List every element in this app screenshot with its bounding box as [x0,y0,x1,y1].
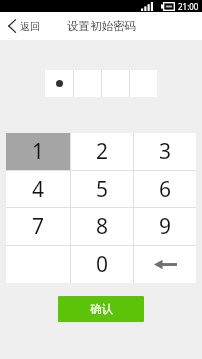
staticText: 4 [32,175,45,204]
button[interactable]: 9 [134,208,196,245]
staticText: 0 [96,250,109,279]
staticText: 确认 [90,302,113,316]
staticText: 返回 [20,20,40,33]
other: Back [8,19,16,33]
button[interactable]: 8 [71,208,133,245]
staticText: 2 [96,137,109,166]
button[interactable]: 0 [71,246,133,283]
staticText: 6 [159,175,172,204]
button[interactable] [45,70,157,97]
staticText: 1 [32,137,45,166]
button[interactable]: 确认 [58,296,144,322]
button[interactable]: Back [0,19,48,33]
button[interactable]: 2 [71,133,133,170]
staticText: 5 [96,175,109,204]
button[interactable]: 3 [134,133,196,170]
button[interactable]: 6 [134,171,196,207]
staticText: 9 [159,212,172,241]
staticText: 7 [32,212,45,241]
staticText: 设置初始密码 [67,19,136,33]
staticText: 21:00 [178,1,199,12]
staticText: 3 [159,137,172,166]
button[interactable]: 7 [6,208,70,245]
button[interactable]: 1 [6,133,70,170]
button[interactable]: 4 [6,171,70,207]
staticText: 8 [96,212,109,241]
button[interactable]: 5 [71,171,133,207]
button[interactable]: Backspace [134,246,196,283]
